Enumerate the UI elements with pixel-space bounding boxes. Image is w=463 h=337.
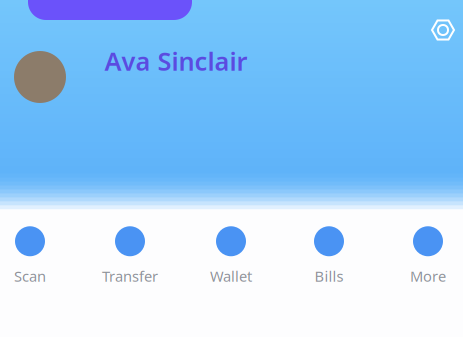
staticText: Transfer <box>102 266 158 286</box>
staticText: Bills <box>314 266 343 286</box>
staticText: More <box>410 266 446 286</box>
button[interactable]: Bills <box>282 227 376 285</box>
button[interactable]: Profile photo <box>14 51 66 103</box>
staticText: Scan <box>14 266 46 286</box>
staticText: Wallet <box>210 266 252 286</box>
staticText: Ava Sinclair <box>104 44 247 78</box>
button[interactable]: Scan <box>0 227 77 285</box>
button[interactable]: Settings <box>423 10 463 50</box>
button[interactable]: More <box>381 227 463 285</box>
button[interactable]: Transfer <box>83 227 177 285</box>
button[interactable]: Wallet <box>184 227 278 285</box>
